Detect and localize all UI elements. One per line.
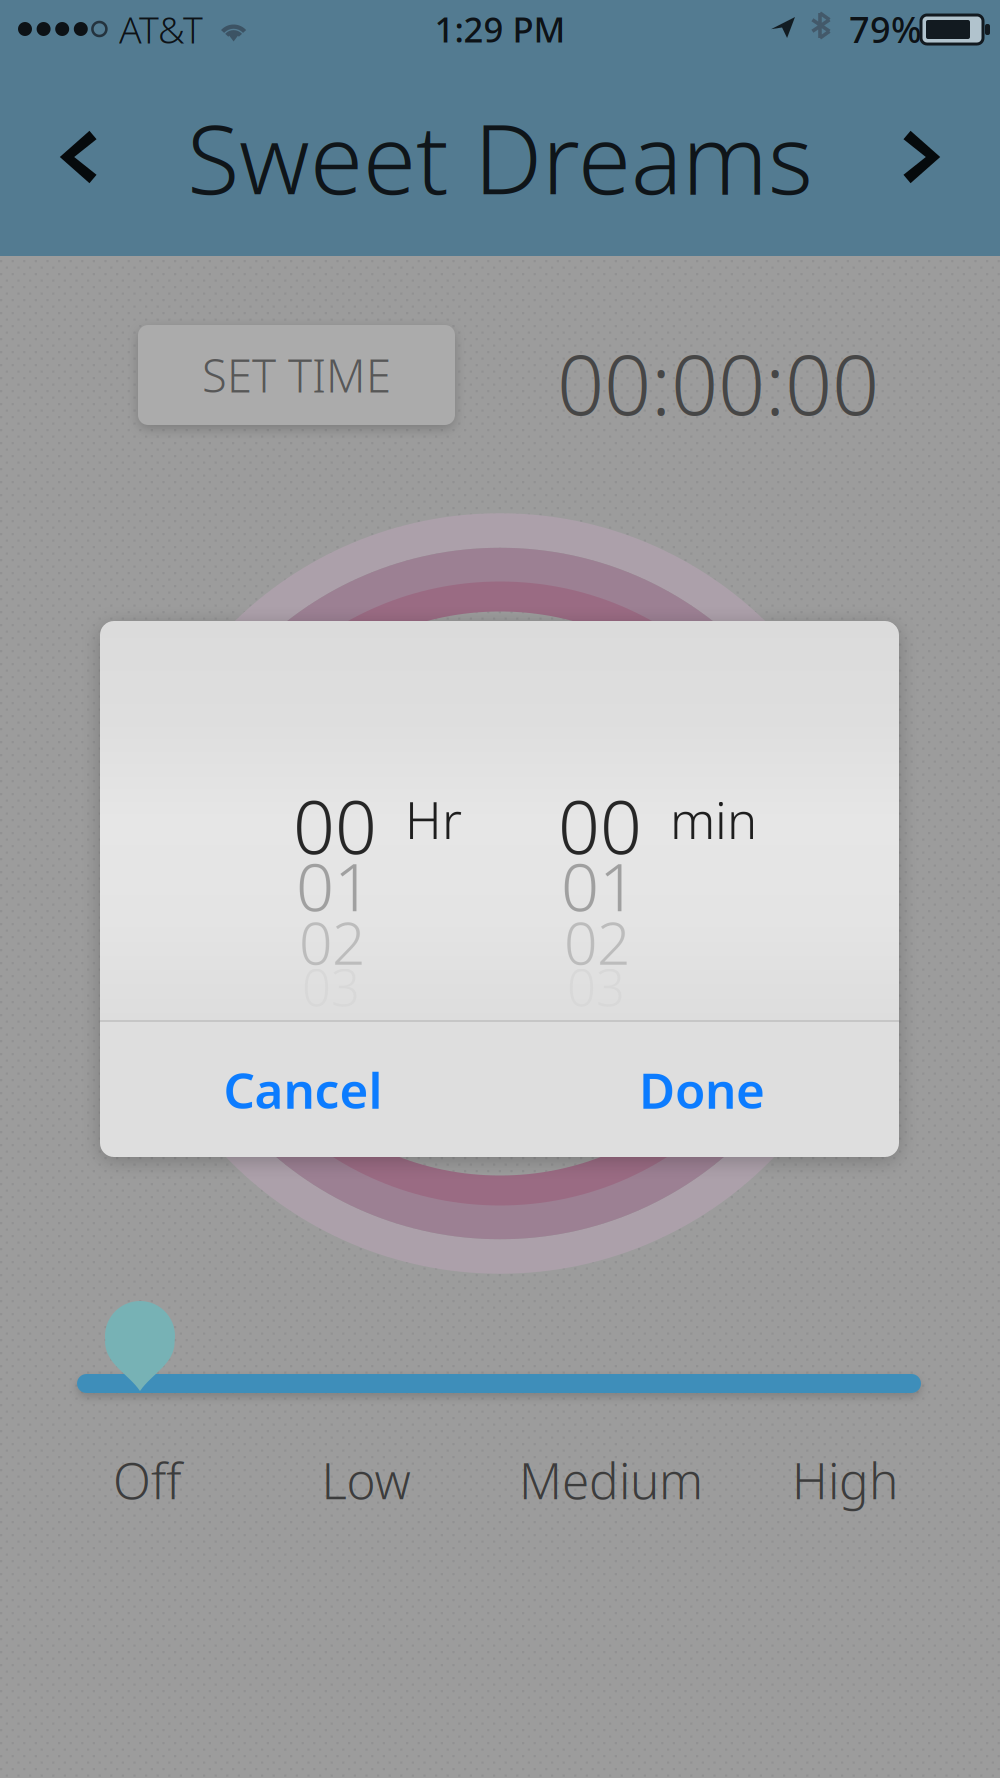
staticText: Cancel (223, 1057, 382, 1122)
staticText: 00 (293, 777, 377, 874)
staticText: 02 (299, 903, 365, 981)
button[interactable]: Done (571, 1022, 833, 1157)
staticText: Sweet Dreams (187, 93, 813, 221)
staticText: Done (639, 1057, 765, 1122)
staticText: 79% (849, 5, 922, 53)
button[interactable]: Cancel (172, 1022, 434, 1157)
staticText: Hr (405, 786, 462, 853)
button[interactable]: Previous (0, 81, 160, 233)
staticText: 00 (558, 777, 642, 874)
staticText: SET TIME (202, 345, 391, 405)
staticText: AT&T (119, 4, 203, 54)
staticText: 03 (567, 953, 625, 1020)
button[interactable]: Next (840, 81, 1000, 233)
staticText: 02 (564, 903, 630, 981)
staticText: min (670, 786, 757, 853)
staticText: 01 (561, 841, 637, 929)
staticText: Off (113, 1447, 181, 1513)
staticText: 03 (302, 953, 360, 1020)
button[interactable]: SET TIME (138, 325, 455, 425)
staticText: Medium (519, 1447, 703, 1513)
staticText: 01 (296, 841, 372, 929)
staticText: 1:29 PM (434, 6, 565, 52)
staticText: High (792, 1447, 898, 1513)
staticText: Low (321, 1447, 410, 1513)
staticText: 00:00:00 (557, 328, 879, 438)
